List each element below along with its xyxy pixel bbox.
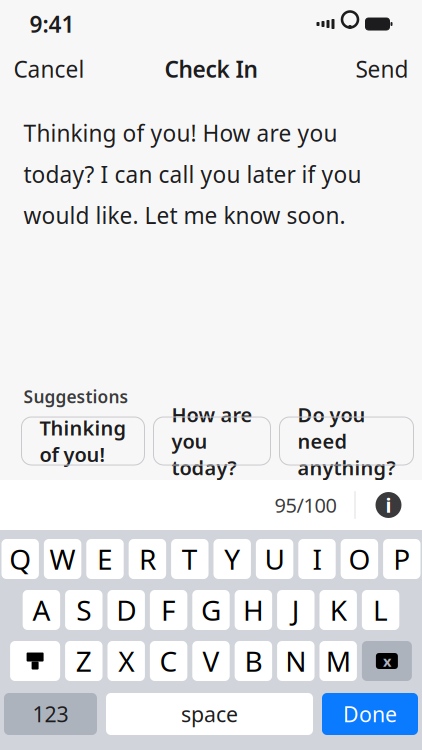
button[interactable]: Cancel — [0, 46, 100, 92]
staticText: X — [118, 642, 134, 680]
staticText: 95/100 — [274, 492, 336, 518]
button[interactable]: O — [341, 539, 378, 579]
button[interactable]: How are you today? — [153, 417, 270, 465]
button[interactable]: S — [65, 590, 102, 630]
staticText: Y — [224, 540, 240, 578]
staticText: B — [244, 642, 262, 680]
staticText: D — [116, 591, 136, 629]
button[interactable]: M — [319, 641, 357, 681]
staticText: i — [385, 492, 391, 518]
button[interactable]: V — [192, 641, 230, 681]
staticText: Thinking of you! — [39, 414, 126, 467]
staticText: I — [312, 540, 321, 578]
staticText: 123 — [32, 700, 68, 728]
button[interactable]: F — [150, 590, 187, 630]
button[interactable]: Information — [371, 488, 405, 522]
button[interactable]: B — [235, 641, 272, 681]
button[interactable]: Q — [1, 539, 39, 579]
button[interactable]: L — [362, 590, 399, 630]
button[interactable]: K — [319, 590, 357, 630]
staticText: U — [265, 540, 285, 578]
staticText: Do you need anything? — [297, 401, 395, 481]
staticText: Thinking of you! How are you today? I ca… — [23, 118, 361, 230]
staticText: S — [76, 591, 91, 629]
staticText: M — [326, 642, 351, 680]
staticText: N — [285, 642, 306, 680]
button[interactable]: H — [235, 590, 272, 630]
button[interactable]: I — [298, 539, 336, 579]
button[interactable]: U — [256, 539, 293, 579]
staticText: O — [348, 540, 370, 578]
staticText: A — [32, 591, 50, 629]
staticText: T — [182, 540, 198, 578]
button[interactable]: Shift — [10, 641, 60, 681]
staticText: Suggestions — [23, 385, 128, 408]
button[interactable]: T — [171, 539, 208, 579]
staticText: C — [160, 642, 178, 680]
staticText: Done — [343, 700, 397, 728]
button[interactable]: space — [106, 693, 313, 735]
button[interactable]: R — [129, 539, 166, 579]
staticText: R — [139, 540, 156, 578]
staticText: F — [161, 591, 176, 629]
button[interactable]: J — [277, 590, 314, 630]
staticText: 9:41 — [29, 9, 74, 39]
staticText: x — [383, 651, 391, 671]
button[interactable]: X — [107, 641, 145, 681]
button[interactable]: D — [107, 590, 145, 630]
staticText: K — [330, 591, 347, 629]
staticText: E — [97, 540, 113, 578]
staticText: Q — [9, 540, 31, 578]
button[interactable]: A — [23, 590, 60, 630]
staticText: H — [243, 591, 264, 629]
button[interactable]: W — [44, 539, 81, 579]
button[interactable]: G — [192, 590, 230, 630]
button[interactable]: 123 — [4, 693, 97, 735]
staticText: G — [201, 591, 221, 629]
staticText: L — [373, 591, 388, 629]
button[interactable]: Delete — [362, 641, 412, 681]
staticText: How are you today? — [171, 401, 252, 481]
staticText: P — [393, 540, 410, 578]
button[interactable]: Done — [322, 693, 418, 735]
staticText: V — [202, 642, 219, 680]
button[interactable]: Do you need anything? — [279, 417, 413, 465]
button[interactable]: E — [86, 539, 124, 579]
staticText: Z — [76, 642, 92, 680]
button[interactable]: C — [150, 641, 187, 681]
button[interactable]: Y — [213, 539, 251, 579]
staticText: W — [50, 540, 76, 578]
button[interactable]: Send — [339, 46, 422, 92]
staticText: Send — [355, 54, 408, 84]
staticText: J — [292, 591, 300, 629]
button[interactable]: Thinking of you! — [21, 417, 144, 465]
button[interactable]: Z — [65, 641, 102, 681]
staticText: Check In — [164, 54, 257, 84]
staticText: Cancel — [13, 54, 84, 84]
button[interactable]: N — [277, 641, 314, 681]
button[interactable]: P — [383, 539, 420, 579]
staticText: space — [181, 700, 238, 728]
